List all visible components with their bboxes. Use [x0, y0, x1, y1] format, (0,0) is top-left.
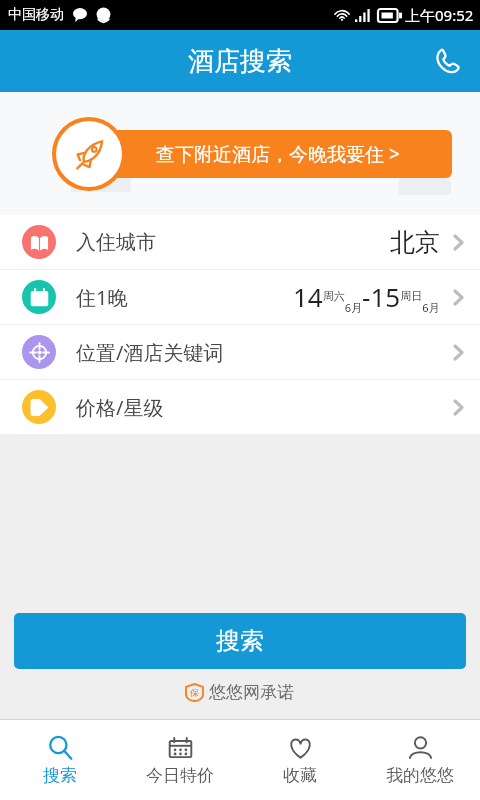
button[interactable]: 搜索	[0, 720, 120, 800]
button[interactable]: 入住城市	[0, 215, 480, 269]
staticText: 收藏	[283, 765, 317, 786]
button[interactable]: 位置/酒店关键词	[0, 325, 480, 379]
staticText: 搜索	[43, 765, 77, 786]
staticText: 保	[190, 687, 199, 698]
button[interactable]: 今日特价	[120, 720, 240, 800]
button[interactable]: 价格/星级	[0, 380, 480, 434]
staticText: 中国移动	[8, 6, 64, 24]
staticText: 入住城市	[76, 230, 156, 255]
staticText: 住1晚	[76, 284, 128, 311]
staticText: 查下附近酒店，今晚我要住 >	[156, 141, 400, 167]
button[interactable]: 我的悠悠	[360, 720, 480, 800]
staticText: 悠悠网承诺	[209, 682, 294, 703]
staticText: 今日特价	[146, 765, 214, 786]
staticText: 北京	[390, 227, 440, 258]
staticText: 我的悠悠	[386, 765, 454, 786]
staticText: 搜索	[216, 626, 264, 656]
staticText: 位置/酒店关键词	[76, 339, 224, 366]
button[interactable]: 搜索	[14, 613, 466, 669]
button[interactable]: Call	[420, 35, 472, 87]
button[interactable]: 保	[0, 682, 480, 703]
staticText: 上午09:52	[405, 5, 474, 25]
staticText: 酒店搜索	[188, 45, 292, 78]
staticText: 14周六6月-15周日6月	[293, 279, 440, 315]
button[interactable]: 住1晚	[0, 270, 480, 324]
staticText: 价格/星级	[76, 394, 164, 421]
button[interactable]: 查下附近酒店，今晚我要住 >	[62, 130, 452, 178]
button[interactable]: 收藏	[240, 720, 360, 800]
